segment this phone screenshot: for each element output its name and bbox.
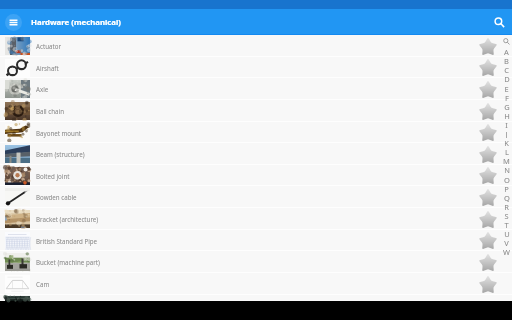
staticText: Ball chain [36, 107, 64, 115]
staticText: British Standard Pipe [36, 237, 98, 245]
staticText: P [504, 184, 509, 193]
button[interactable]: Favourite [477, 57, 498, 78]
staticText: D [504, 74, 510, 84]
staticText: V [504, 238, 509, 247]
staticText: M [503, 156, 510, 165]
button[interactable]: Favourite [477, 144, 498, 165]
button[interactable]: L [501, 147, 512, 156]
button[interactable]: B [501, 56, 512, 65]
staticText: F [505, 93, 509, 102]
button[interactable]: Favourite [477, 187, 498, 208]
button[interactable]: British Standard Pipe [0, 230, 512, 251]
button[interactable]: Bowden cable [0, 186, 512, 208]
button[interactable]: D [501, 74, 512, 84]
staticText: R [504, 202, 509, 211]
button[interactable]: J [501, 129, 512, 138]
staticText: O [504, 175, 510, 184]
staticText: Hardware (mechanical) [31, 17, 121, 28]
button[interactable]: V [501, 238, 512, 247]
staticText: A [504, 47, 509, 56]
staticText: U [504, 229, 510, 238]
button[interactable]: Search [487, 10, 512, 35]
staticText: Airshaft [36, 64, 59, 72]
staticText: N [504, 165, 510, 175]
button[interactable]: O [501, 175, 512, 184]
button[interactable]: Favourite [477, 274, 498, 295]
button[interactable]: Favourite [477, 165, 498, 186]
button[interactable]: Cam [0, 273, 512, 295]
button[interactable]: Beam (structure) [0, 143, 512, 165]
staticText: J [505, 129, 508, 138]
button[interactable]: H [501, 111, 512, 120]
button[interactable]: A [501, 47, 512, 56]
button[interactable]: C [501, 65, 512, 74]
button[interactable]: Bayonet mount [0, 122, 512, 143]
staticText: W [503, 247, 510, 256]
button[interactable]: Bolted joint [0, 165, 512, 186]
staticText: Q [504, 193, 510, 202]
staticText: Bayonet mount [36, 129, 81, 137]
button[interactable]: Actuator [0, 35, 512, 57]
staticText: E [504, 84, 509, 93]
button[interactable]: K [501, 138, 512, 147]
staticText: Bracket (architecture) [36, 215, 99, 223]
button[interactable]: S [501, 211, 512, 220]
staticText: H [504, 111, 510, 120]
staticText: I [505, 120, 508, 129]
staticText: S [504, 211, 509, 220]
button[interactable] [0, 295, 512, 301]
button[interactable]: T [501, 220, 512, 229]
button[interactable]: Favourite [477, 122, 498, 143]
button[interactable]: Favourite [477, 79, 498, 100]
button[interactable]: Bucket (machine part) [0, 251, 512, 273]
button[interactable]: N [501, 165, 512, 175]
button[interactable]: Q [501, 193, 512, 202]
staticText: Actuator [36, 42, 61, 50]
button[interactable]: Favourite [477, 209, 498, 230]
button[interactable]: Bracket (architecture) [0, 208, 512, 230]
button[interactable]: W [501, 247, 512, 256]
button[interactable]: U [501, 229, 512, 238]
button[interactable]: P [501, 184, 512, 193]
button[interactable]: Favourite [477, 36, 498, 57]
staticText: Bowden cable [36, 193, 77, 201]
button[interactable]: Favourite [477, 252, 498, 273]
button[interactable]: G [501, 102, 512, 111]
staticText: T [504, 220, 509, 229]
button[interactable]: Airshaft [0, 57, 512, 78]
button[interactable]: Favourite [477, 230, 498, 251]
staticText: C [504, 65, 509, 74]
staticText: Bucket (machine part) [36, 258, 100, 266]
staticText: L [505, 147, 509, 156]
staticText: Beam (structure) [36, 150, 85, 158]
button[interactable]: Search index [501, 35, 512, 47]
button[interactable]: Axle [0, 78, 512, 100]
button[interactable]: E [501, 84, 512, 93]
staticText: K [504, 138, 509, 147]
button[interactable]: R [501, 202, 512, 211]
staticText: B [504, 56, 509, 65]
button[interactable]: M [501, 156, 512, 165]
button[interactable]: Open navigation drawer [5, 14, 22, 31]
button[interactable]: F [501, 93, 512, 102]
button[interactable]: I [501, 120, 512, 129]
staticText: Cam [36, 280, 50, 288]
button[interactable]: Favourite [477, 101, 498, 122]
button[interactable]: Ball chain [0, 100, 512, 122]
staticText: Bolted joint [36, 172, 70, 180]
staticText: Axle [36, 85, 49, 93]
staticText: G [504, 102, 510, 111]
